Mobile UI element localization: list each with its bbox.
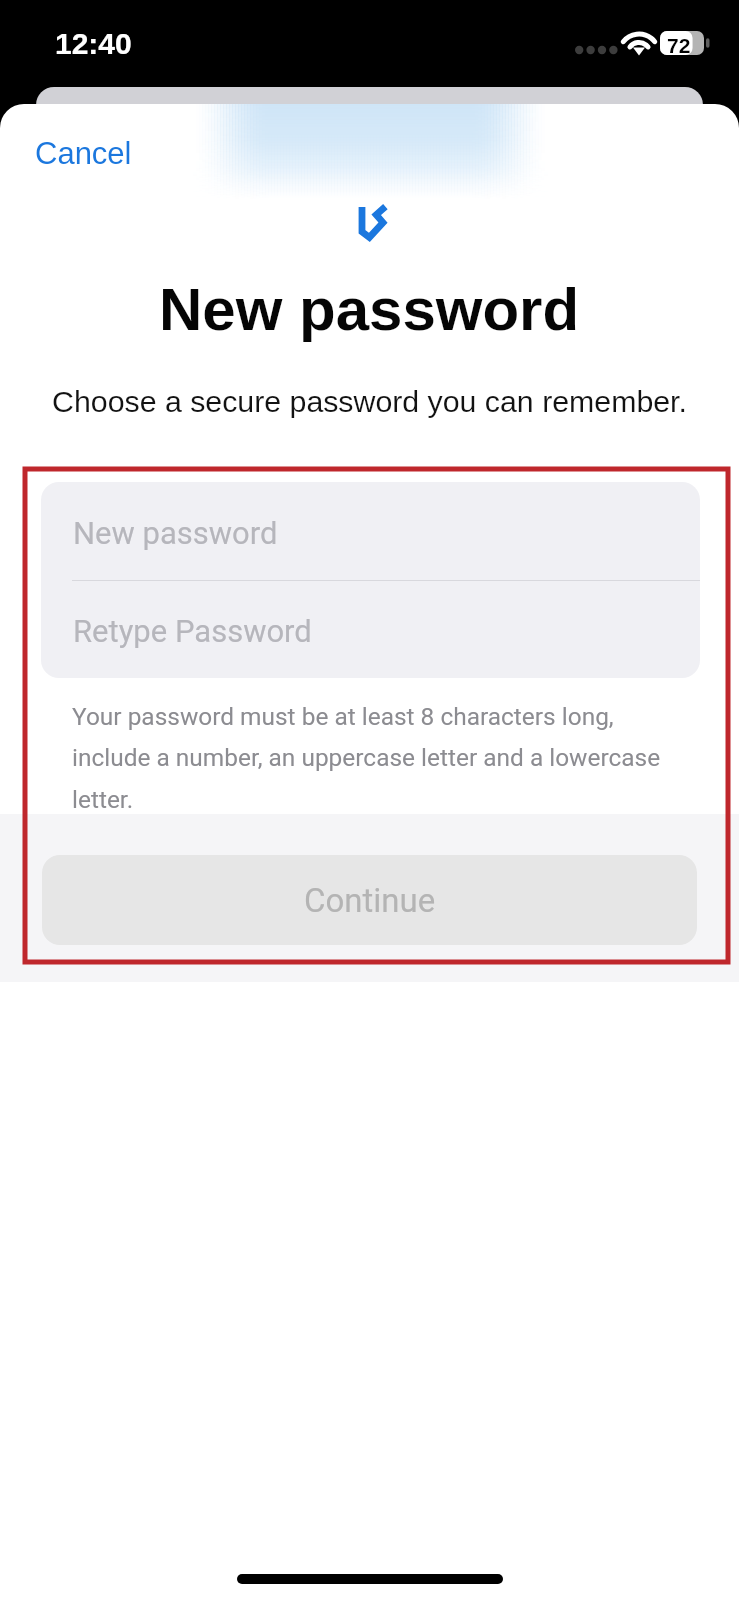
staticText: Choose a secure password you can remembe… (52, 385, 687, 419)
staticText: Cancel (35, 136, 132, 171)
staticText: Retype Password (73, 613, 312, 649)
staticText: New password (73, 515, 278, 551)
staticText: Continue (304, 881, 436, 920)
staticText: 12:40 (55, 27, 132, 61)
button[interactable]: New password (41, 482, 700, 580)
button[interactable]: Continue (42, 855, 697, 945)
other: Home indicator (237, 1574, 503, 1584)
staticText: 72 (667, 34, 691, 57)
other: Cellular signal (574, 45, 618, 57)
staticText: New password (159, 276, 580, 343)
other: App logo (354, 198, 394, 246)
button[interactable]: Cancel (24, 128, 143, 179)
button[interactable]: Retype Password (41, 580, 700, 678)
other: Battery 72 percent (660, 31, 712, 57)
other: Wi-Fi (623, 31, 655, 55)
staticText: Your password must be at least 8 charact… (72, 702, 672, 814)
